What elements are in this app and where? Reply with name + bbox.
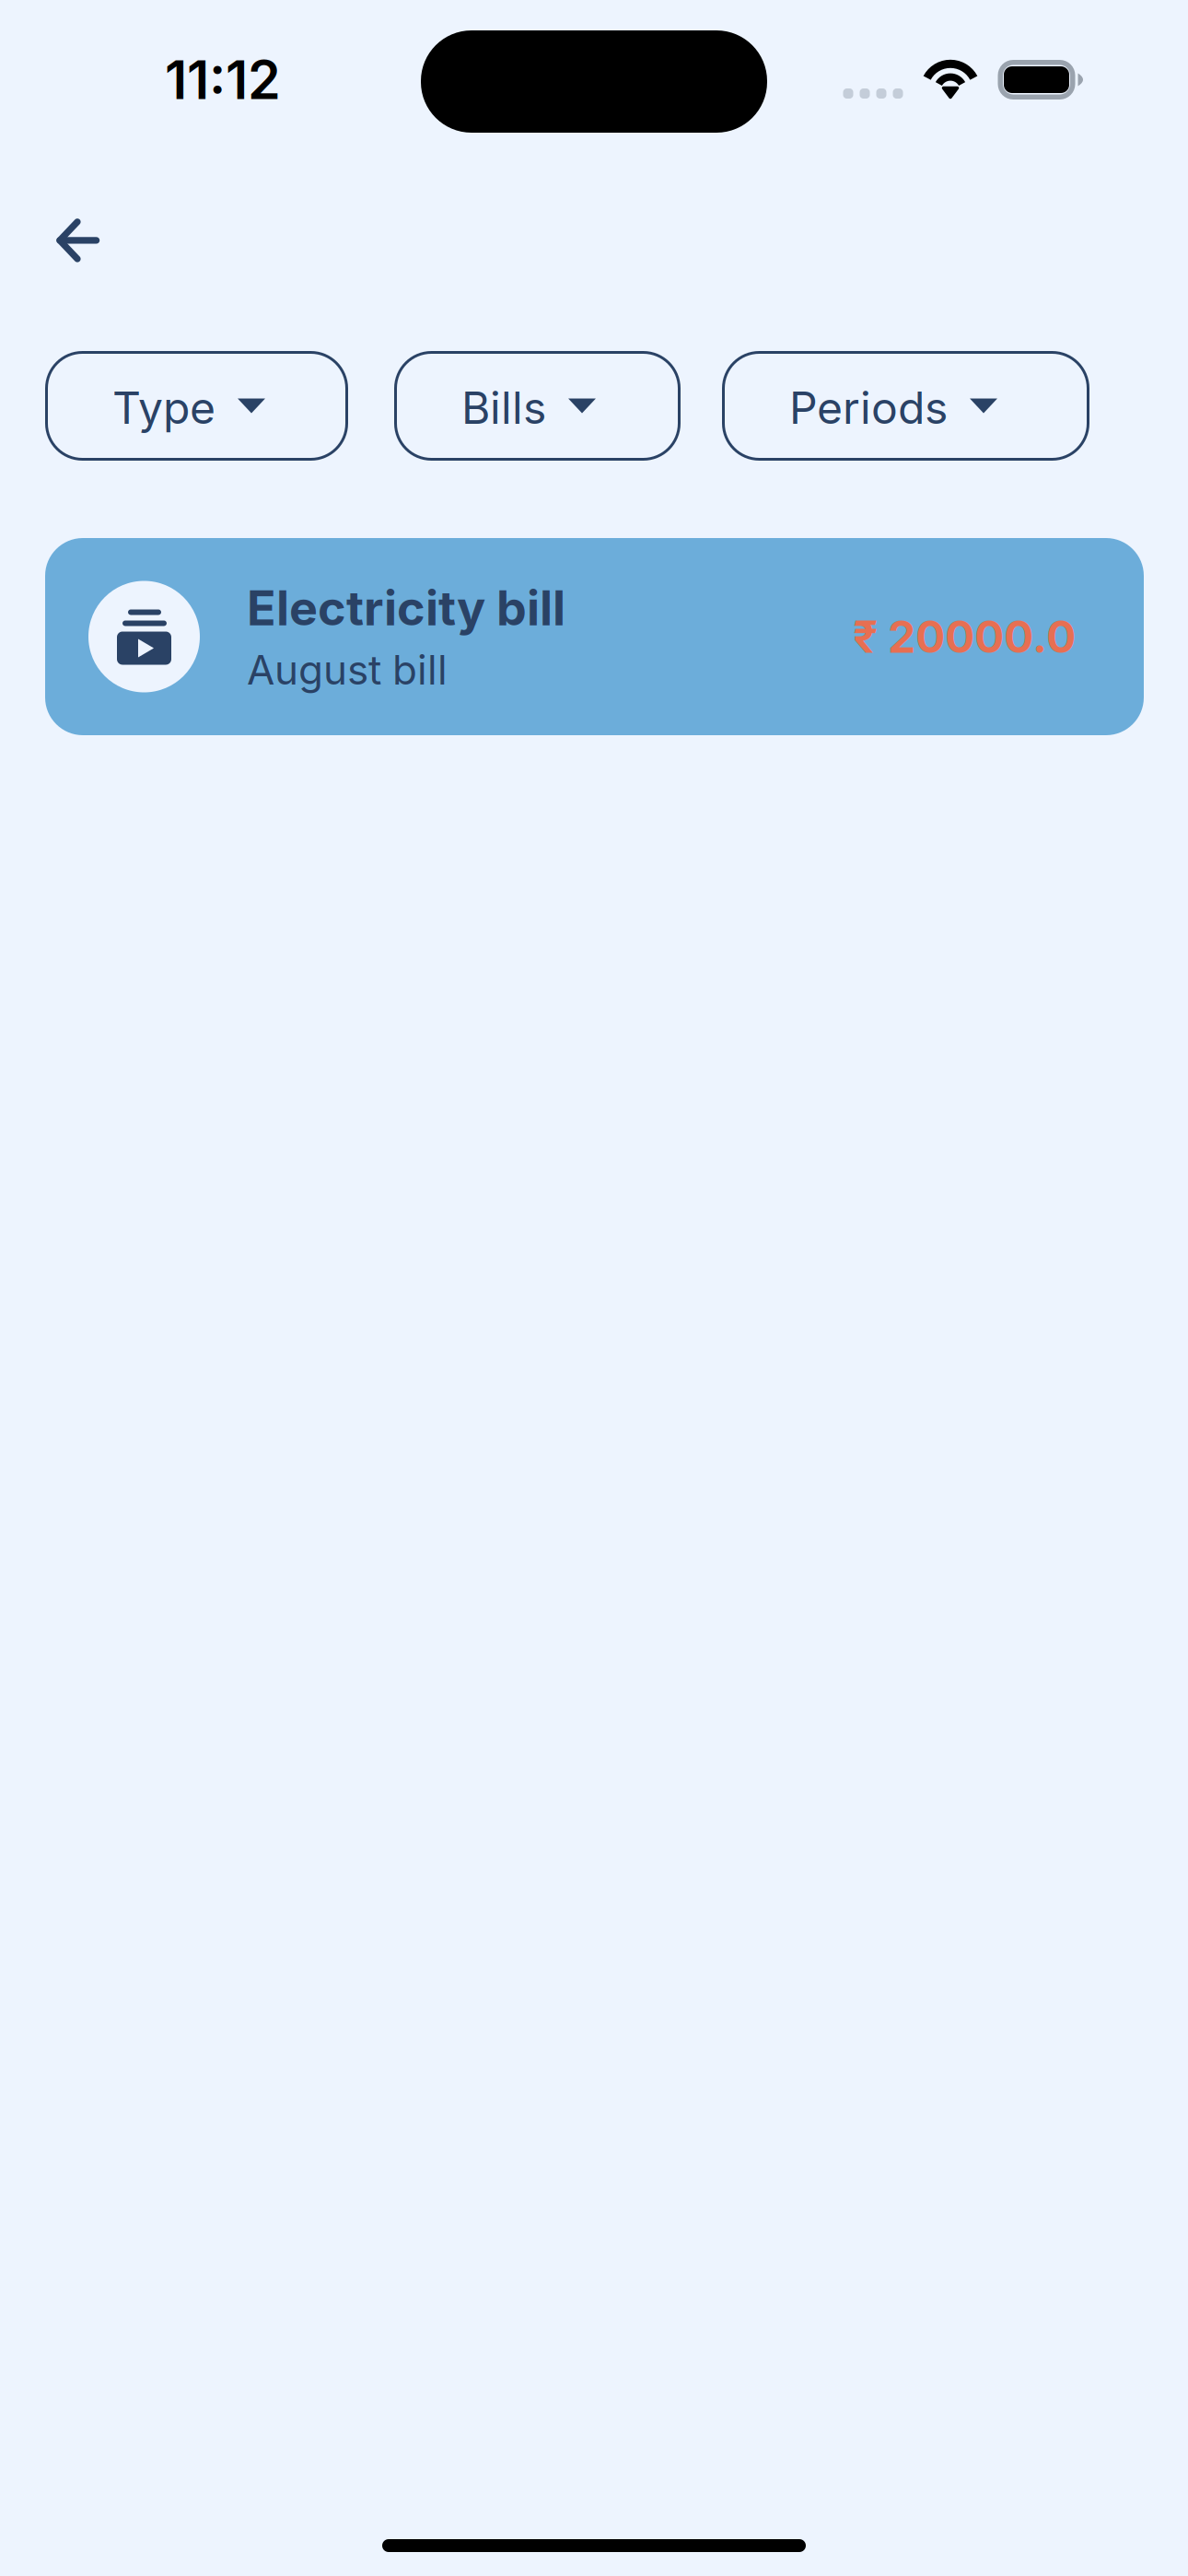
- staticText: Type: [112, 381, 215, 434]
- staticText: ₹ 20000.0: [853, 610, 1076, 663]
- staticText: Periods: [789, 381, 948, 434]
- button[interactable]: Type: [45, 351, 348, 461]
- button[interactable]: Bills: [394, 351, 681, 461]
- button[interactable]: Periods: [722, 351, 1089, 461]
- staticText: August bill: [247, 645, 448, 694]
- staticText: Bills: [461, 381, 546, 434]
- button[interactable]: Electricity bill: [45, 538, 1144, 735]
- staticText: Electricity bill: [247, 579, 565, 637]
- staticText: 11:12: [165, 48, 281, 112]
- button[interactable]: Back: [0, 193, 129, 287]
